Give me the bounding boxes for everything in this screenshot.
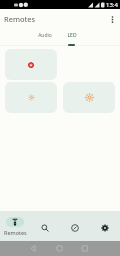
other: Brightness up	[85, 93, 94, 102]
button[interactable]: Settings	[90, 211, 120, 241]
other: Power	[28, 62, 34, 68]
button[interactable]: Brightness up	[63, 82, 115, 113]
button[interactable]: More options	[104, 11, 120, 27]
button[interactable]: LED	[58, 29, 85, 47]
staticText: Remotes	[4, 14, 35, 24]
button[interactable]: Power	[5, 49, 57, 80]
other: Explore	[71, 224, 79, 232]
staticText: 13:4	[106, 1, 118, 9]
other: Brightness down	[28, 94, 35, 101]
other: Settings	[101, 224, 109, 232]
button[interactable]: Explore	[60, 211, 90, 241]
other: Remotes	[11, 218, 19, 226]
staticText: Audio	[38, 32, 52, 39]
button[interactable]: Remotes	[0, 211, 30, 241]
staticText: Remotes	[4, 229, 27, 236]
other: Search	[41, 224, 49, 232]
button[interactable]: Brightness down	[5, 82, 57, 113]
button[interactable]: Audio	[31, 29, 58, 47]
staticText: LED	[67, 32, 77, 39]
button[interactable]: Search	[30, 211, 60, 241]
